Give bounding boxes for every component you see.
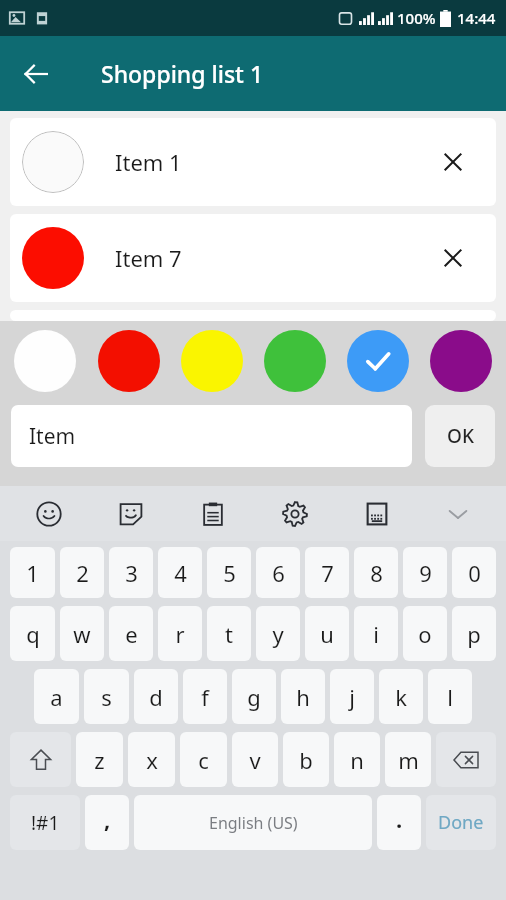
button[interactable]: Item 1 xyxy=(10,118,496,206)
staticText: u xyxy=(320,619,334,649)
staticText: c xyxy=(198,745,209,775)
button[interactable]: 7 xyxy=(305,547,349,598)
button[interactable]: j xyxy=(330,669,374,724)
button[interactable]: 8 xyxy=(354,547,398,598)
staticText: 3 xyxy=(125,558,138,588)
staticText: q xyxy=(26,619,40,649)
button[interactable]: Hide keyboard xyxy=(440,496,476,532)
staticText: y xyxy=(272,619,284,649)
staticText: Item 7 xyxy=(115,243,182,273)
button[interactable]: 6 xyxy=(256,547,300,598)
button[interactable]: Colour 5 xyxy=(347,330,409,392)
button[interactable]: q xyxy=(10,606,55,661)
button[interactable]: o xyxy=(403,606,447,661)
staticText: 2 xyxy=(76,558,89,588)
button[interactable]: Settings xyxy=(276,495,314,533)
button[interactable]: . xyxy=(377,795,421,850)
button[interactable]: Colour 2 xyxy=(98,330,160,392)
button[interactable]: 5 xyxy=(207,547,251,598)
button[interactable]: Colour 1 xyxy=(14,330,76,392)
button[interactable]: Colour 6 xyxy=(430,330,492,392)
button[interactable]: w xyxy=(60,606,104,661)
staticText: Done xyxy=(438,810,484,835)
staticText: e xyxy=(125,619,138,649)
button[interactable]: b xyxy=(283,732,329,787)
button[interactable]: Emoji xyxy=(30,495,68,533)
staticText: z xyxy=(94,745,105,775)
button[interactable]: k xyxy=(379,669,423,724)
staticText: f xyxy=(201,682,209,712)
button[interactable]: g xyxy=(232,669,276,724)
button[interactable]: 0 xyxy=(452,547,496,598)
staticText: 5 xyxy=(223,558,236,588)
button[interactable]: Colour 3 xyxy=(181,330,243,392)
staticText: t xyxy=(225,619,233,649)
staticText: 14:44 xyxy=(457,8,496,28)
button[interactable]: 1 xyxy=(10,547,55,598)
button[interactable]: Remove Item 7 xyxy=(432,237,474,279)
button[interactable]: r xyxy=(158,606,202,661)
button[interactable]: 3 xyxy=(109,547,153,598)
staticText: b xyxy=(299,745,313,775)
button[interactable]: English (US) xyxy=(134,795,372,850)
button[interactable]: p xyxy=(452,606,496,661)
button[interactable]: i xyxy=(354,606,398,661)
staticText: d xyxy=(149,682,163,712)
button[interactable]: Stickers xyxy=(112,495,150,533)
button[interactable]: f xyxy=(183,669,227,724)
staticText: s xyxy=(101,682,112,712)
button[interactable]: e xyxy=(109,606,153,661)
staticText: OK xyxy=(447,423,474,449)
staticText: p xyxy=(467,619,481,649)
staticText: Item 1 xyxy=(115,147,182,177)
button[interactable]: Back xyxy=(10,48,62,100)
button[interactable]: l xyxy=(428,669,472,724)
button[interactable]: Backspace xyxy=(436,732,496,787)
staticText: o xyxy=(418,619,432,649)
button[interactable]: n xyxy=(334,732,380,787)
button[interactable]: Remove Item 1 xyxy=(432,141,474,183)
button[interactable]: !#1 xyxy=(10,795,80,850)
button[interactable]: c xyxy=(180,732,227,787)
button[interactable]: s xyxy=(84,669,129,724)
button[interactable]: y xyxy=(256,606,300,661)
button[interactable]: OK xyxy=(425,405,495,467)
button[interactable]: Keyboard layout xyxy=(358,495,396,533)
staticText: . xyxy=(396,804,403,834)
button[interactable]: d xyxy=(134,669,178,724)
button[interactable]: x xyxy=(128,732,175,787)
button[interactable]: Item xyxy=(11,405,412,467)
button[interactable]: a xyxy=(34,669,79,724)
staticText: Item xyxy=(29,422,76,451)
button[interactable]: t xyxy=(207,606,251,661)
button[interactable]: Item 7 xyxy=(10,214,496,302)
staticText: 6 xyxy=(272,558,285,588)
button[interactable]: 9 xyxy=(403,547,447,598)
staticText: j xyxy=(349,682,355,712)
staticText: 7 xyxy=(321,558,334,588)
button[interactable]: Done xyxy=(426,795,496,850)
staticText: v xyxy=(249,745,261,775)
staticText: , xyxy=(104,804,111,834)
button[interactable]: 4 xyxy=(158,547,202,598)
button[interactable]: Clipboard xyxy=(194,495,232,533)
button[interactable]: 2 xyxy=(60,547,104,598)
staticText: 9 xyxy=(419,558,432,588)
button[interactable]: u xyxy=(305,606,349,661)
staticText: !#1 xyxy=(31,810,60,836)
button[interactable]: , xyxy=(85,795,129,850)
button[interactable]: m xyxy=(385,732,431,787)
staticText: r xyxy=(175,619,185,649)
staticText: English (US) xyxy=(209,812,298,834)
staticText: 0 xyxy=(468,558,481,588)
button[interactable]: h xyxy=(281,669,325,724)
staticText: m xyxy=(398,745,419,775)
button[interactable]: Colour 4 xyxy=(264,330,326,392)
button[interactable]: z xyxy=(76,732,123,787)
button[interactable]: v xyxy=(232,732,278,787)
staticText: a xyxy=(50,682,63,712)
button[interactable]: Shift xyxy=(10,732,71,787)
staticText: h xyxy=(296,682,310,712)
staticText: n xyxy=(350,745,364,775)
